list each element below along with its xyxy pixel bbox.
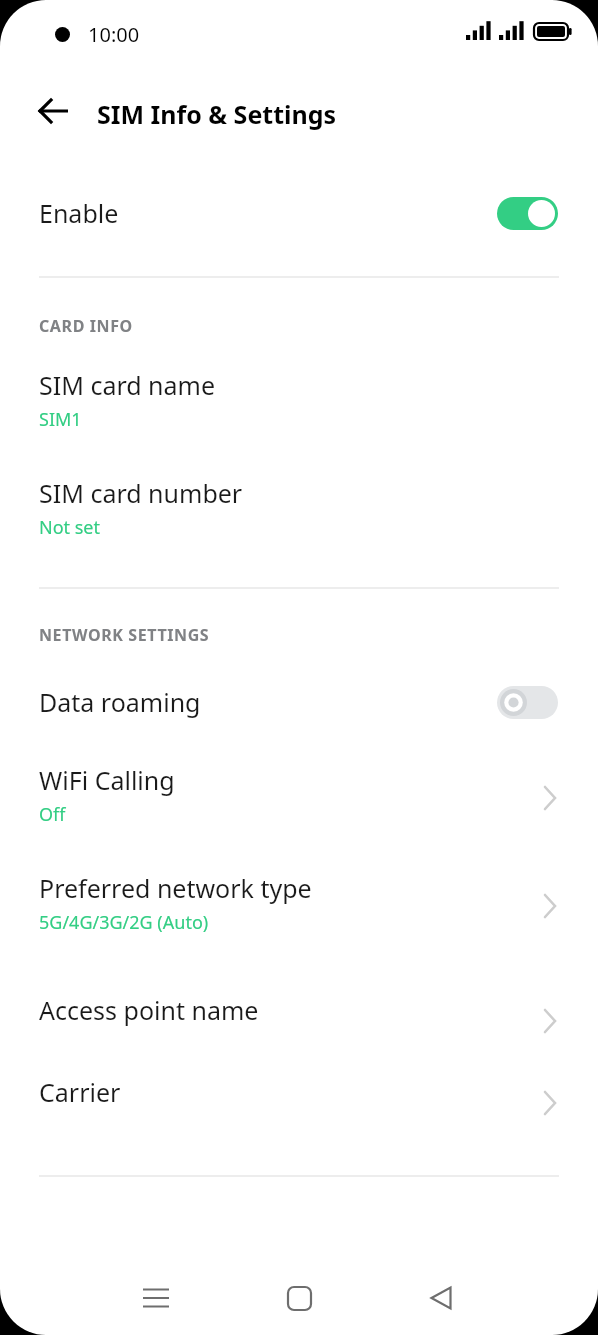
staticText: CARD INFO: [39, 315, 133, 337]
button[interactable]: Enable toggle, on: [497, 197, 558, 230]
staticText: NETWORK SETTINGS: [39, 624, 210, 646]
button[interactable]: Back: [417, 1274, 465, 1322]
button[interactable]: Home: [275, 1274, 323, 1322]
staticText: SIM card number: [39, 476, 243, 510]
button[interactable]: Back: [30, 87, 78, 135]
staticText: 5G/4G/3G/2G (Auto): [39, 910, 209, 935]
staticText: 10:00: [88, 21, 140, 48]
button[interactable]: SIM card name: [0, 366, 598, 446]
staticText: Carrier: [39, 1075, 121, 1109]
staticText: Preferred network type: [39, 871, 312, 905]
button[interactable]: Data roaming: [0, 670, 598, 734]
staticText: SIM1: [39, 407, 82, 432]
button[interactable]: Access point name: [0, 979, 598, 1041]
button[interactable]: SIM card number: [0, 474, 598, 554]
staticText: Off: [39, 802, 66, 827]
button[interactable]: Preferred network type: [0, 869, 598, 949]
button[interactable]: Enable: [0, 180, 598, 246]
staticText: Not set: [39, 515, 101, 540]
button[interactable]: WiFi Calling: [0, 761, 598, 841]
staticText: Access point name: [39, 993, 259, 1027]
staticText: SIM Info & Settings: [97, 97, 337, 131]
button[interactable]: Carrier: [0, 1061, 598, 1123]
staticText: SIM card name: [39, 368, 216, 402]
staticText: Enable: [39, 196, 119, 230]
staticText: Data roaming: [39, 685, 201, 719]
button[interactable]: Recent apps: [132, 1274, 180, 1322]
staticText: WiFi Calling: [39, 763, 175, 797]
button[interactable]: Data roaming toggle, off: [497, 686, 558, 719]
